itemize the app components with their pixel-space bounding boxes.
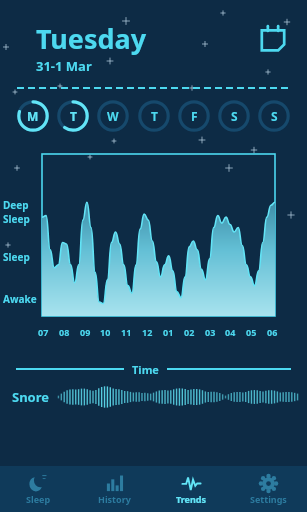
staticText: 31-1 Mar: [36, 57, 92, 75]
staticText: Deep: [3, 198, 29, 212]
staticText: S: [231, 108, 238, 124]
staticText: F: [191, 108, 198, 124]
staticText: 08: [59, 326, 70, 338]
staticText: 03: [205, 326, 216, 338]
staticText: 09: [80, 326, 91, 338]
staticText: Sleep: [26, 493, 51, 505]
button[interactable]: T: [56, 99, 90, 133]
staticText: Time: [132, 362, 159, 377]
staticText: Tuesday: [36, 20, 147, 57]
staticText: W: [107, 108, 119, 124]
button[interactable]: Sleep: [0, 466, 76, 512]
button[interactable]: S: [217, 99, 251, 133]
staticText: 11: [121, 326, 132, 338]
button[interactable]: T: [137, 99, 171, 133]
button[interactable]: Trends: [153, 466, 230, 512]
staticText: 05: [246, 326, 257, 338]
staticText: Trends: [176, 493, 207, 505]
button[interactable]: S: [257, 99, 291, 133]
button[interactable]: W: [96, 99, 130, 133]
staticText: 07: [38, 326, 49, 338]
staticText: History: [98, 493, 131, 505]
staticText: 02: [184, 326, 195, 338]
button[interactable]: F: [177, 99, 211, 133]
staticText: M: [27, 108, 39, 124]
staticText: 04: [225, 326, 236, 338]
staticText: Sleep: [3, 250, 30, 264]
staticText: S: [271, 108, 278, 124]
staticText: 10: [100, 326, 111, 338]
staticText: T: [151, 108, 158, 124]
staticText: Snore: [12, 388, 50, 406]
staticText: T: [70, 108, 77, 124]
button[interactable]: Calendar: [257, 22, 289, 54]
staticText: 01: [163, 326, 174, 338]
staticText: Settings: [250, 493, 287, 505]
button[interactable]: M: [16, 99, 50, 133]
staticText: 12: [142, 326, 153, 338]
staticText: 06: [267, 326, 278, 338]
button[interactable]: Settings: [230, 466, 307, 512]
staticText: Awake: [3, 292, 37, 306]
button[interactable]: History: [76, 466, 153, 512]
staticText: Sleep: [3, 212, 30, 226]
